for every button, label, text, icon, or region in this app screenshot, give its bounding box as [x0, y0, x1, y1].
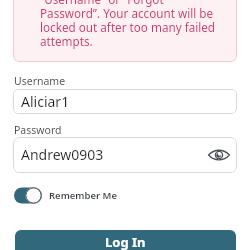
staticText: Andrew0903: [21, 145, 104, 164]
button[interactable]: Remember Me: [14, 187, 117, 204]
button[interactable]: Aliciar1: [13, 89, 237, 114]
staticText: Login failed. Please check your “Usernam…: [40, 0, 218, 50]
staticText: Aliciar1: [21, 92, 70, 111]
staticText: Remember Me: [49, 189, 117, 202]
staticText: Log In: [105, 233, 146, 250]
button[interactable]: Show password: [207, 145, 231, 165]
staticText: Password: [14, 123, 62, 137]
button[interactable]: Log In: [15, 230, 236, 250]
staticText: Username: [14, 74, 66, 88]
button[interactable]: Andrew0903: [13, 137, 237, 173]
